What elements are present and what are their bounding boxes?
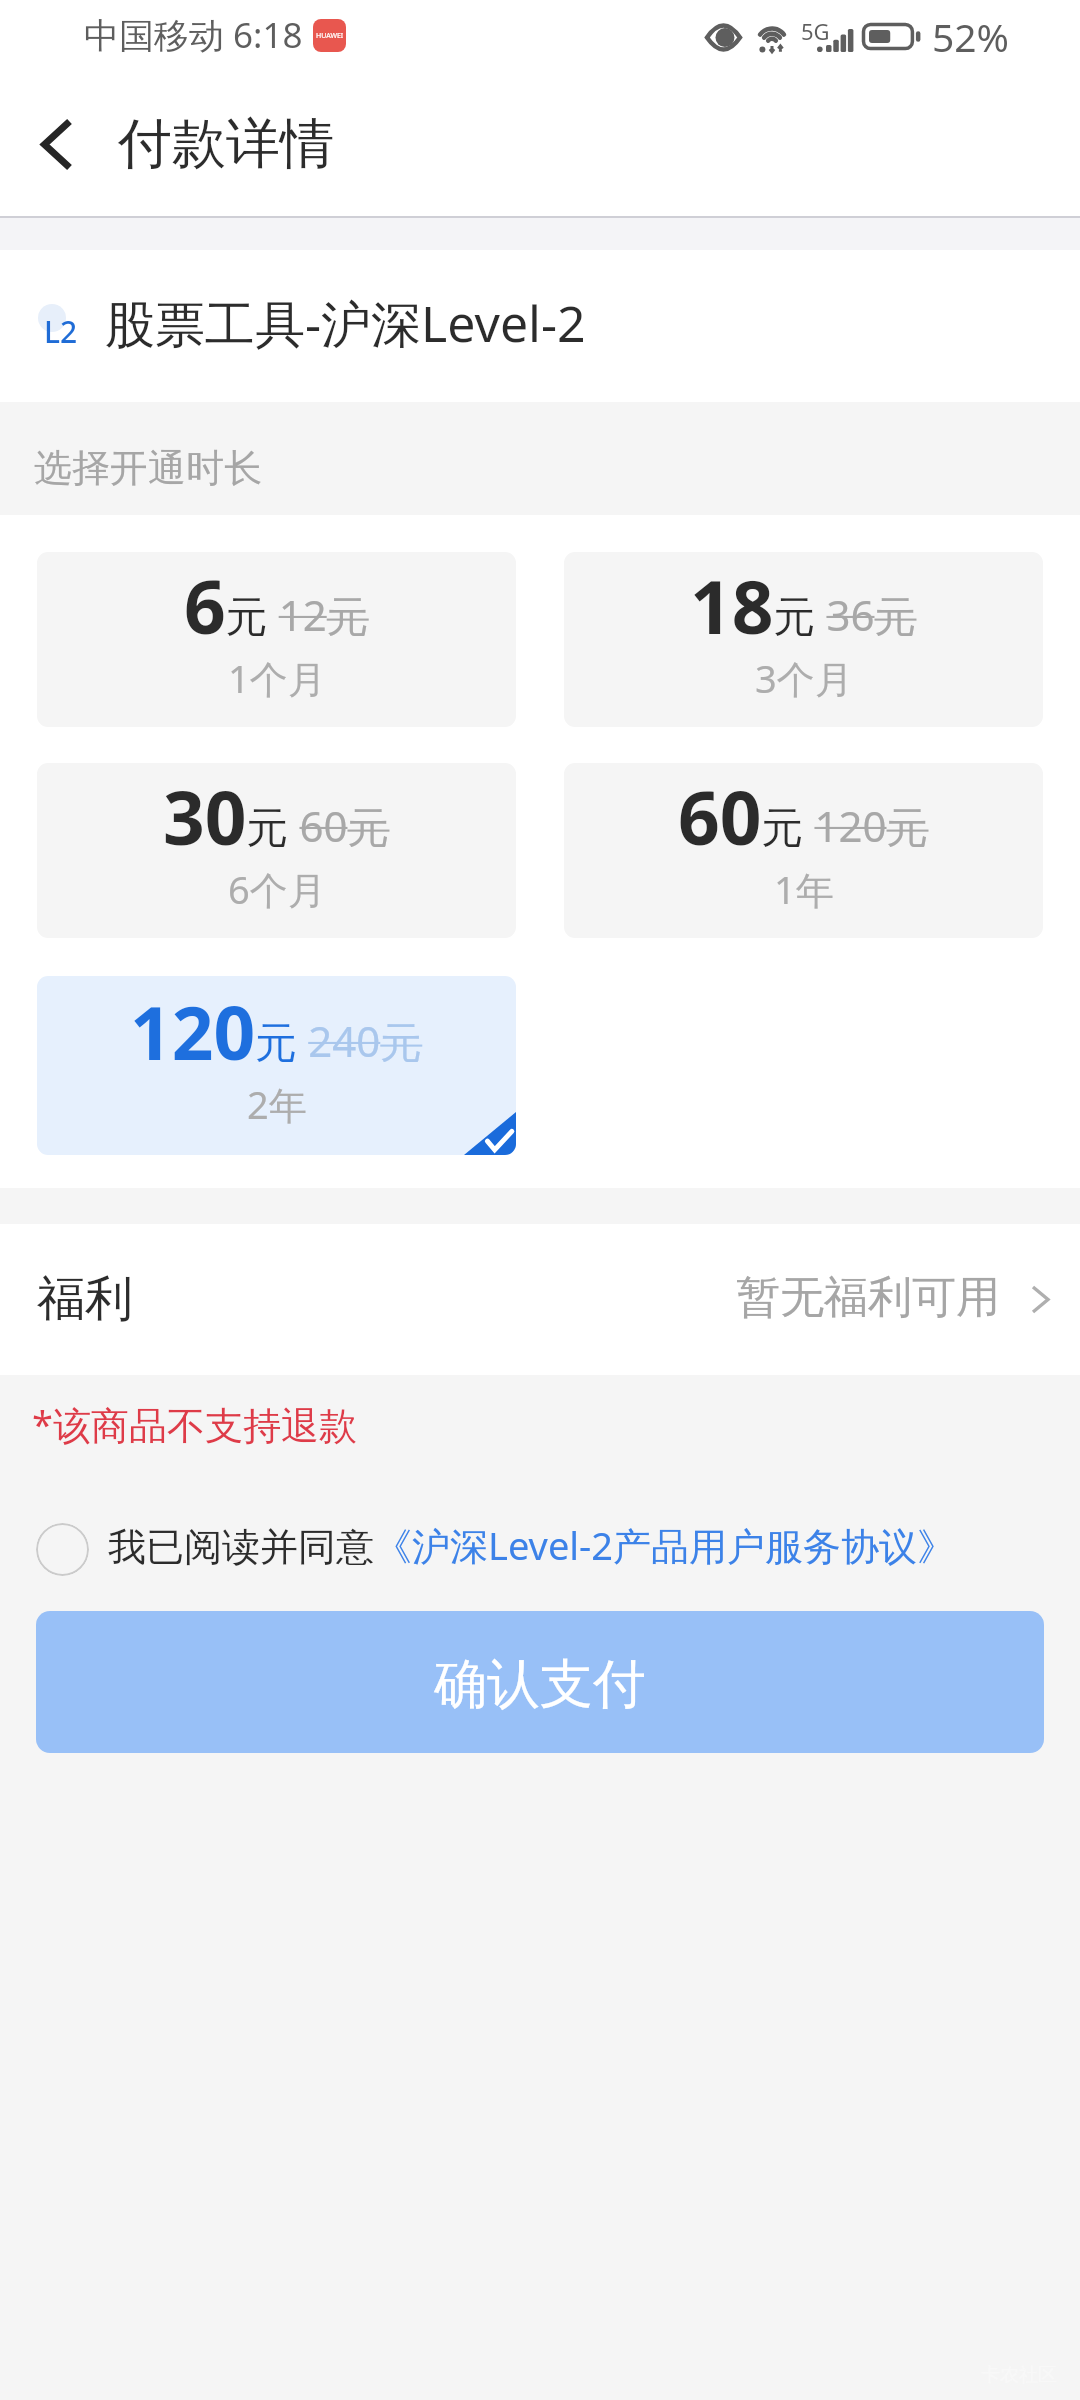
staticText: 3个月 [755,652,853,704]
button[interactable]: 120元 240元 [37,976,516,1155]
staticText: 选择开通时长 [34,444,262,492]
button[interactable]: 6元 12元 [37,552,516,727]
button[interactable]: 福利 [0,1224,1080,1375]
staticText: 1个月 [228,652,326,704]
button[interactable]: 60元 120元 [564,763,1043,938]
staticText: 5G [801,16,830,46]
staticText: 确认支付 [434,1651,646,1718]
staticText: 6个月 [228,863,326,915]
staticText: 付款详情 [118,110,334,178]
staticText: 18元 36元 [690,556,917,655]
staticText: 6元 12元 [184,556,369,655]
staticText: 中国移动 6:18 [84,11,303,59]
staticText: L2 [44,311,78,352]
button[interactable]: Back [16,103,98,185]
button[interactable]: 30元 60元 [37,763,516,938]
staticText: 股票工具-沪深Level-2 [105,289,586,357]
button[interactable]: 18元 36元 [564,552,1043,727]
staticText: 2年 [247,1078,307,1130]
button[interactable]: 我已阅读并同意《沪深Level-2产品用户服务协议》 [0,1493,1080,1597]
staticText: 60元 120元 [678,767,929,866]
staticText: 120元 240元 [130,982,423,1081]
staticText: *该商品不支持退款 [32,1398,357,1450]
button[interactable]: 确认支付 [36,1611,1044,1753]
staticText: 福利 [37,1269,133,1329]
staticText: 我已阅读并同意《沪深Level-2产品用户服务协议》 [108,1519,956,1571]
staticText: 30元 60元 [163,767,390,866]
staticText: 1年 [774,863,834,915]
staticText: HUAWEI [316,31,344,41]
staticText: 暂无福利可用 [736,1270,1000,1325]
staticText: 52% [932,10,1010,63]
